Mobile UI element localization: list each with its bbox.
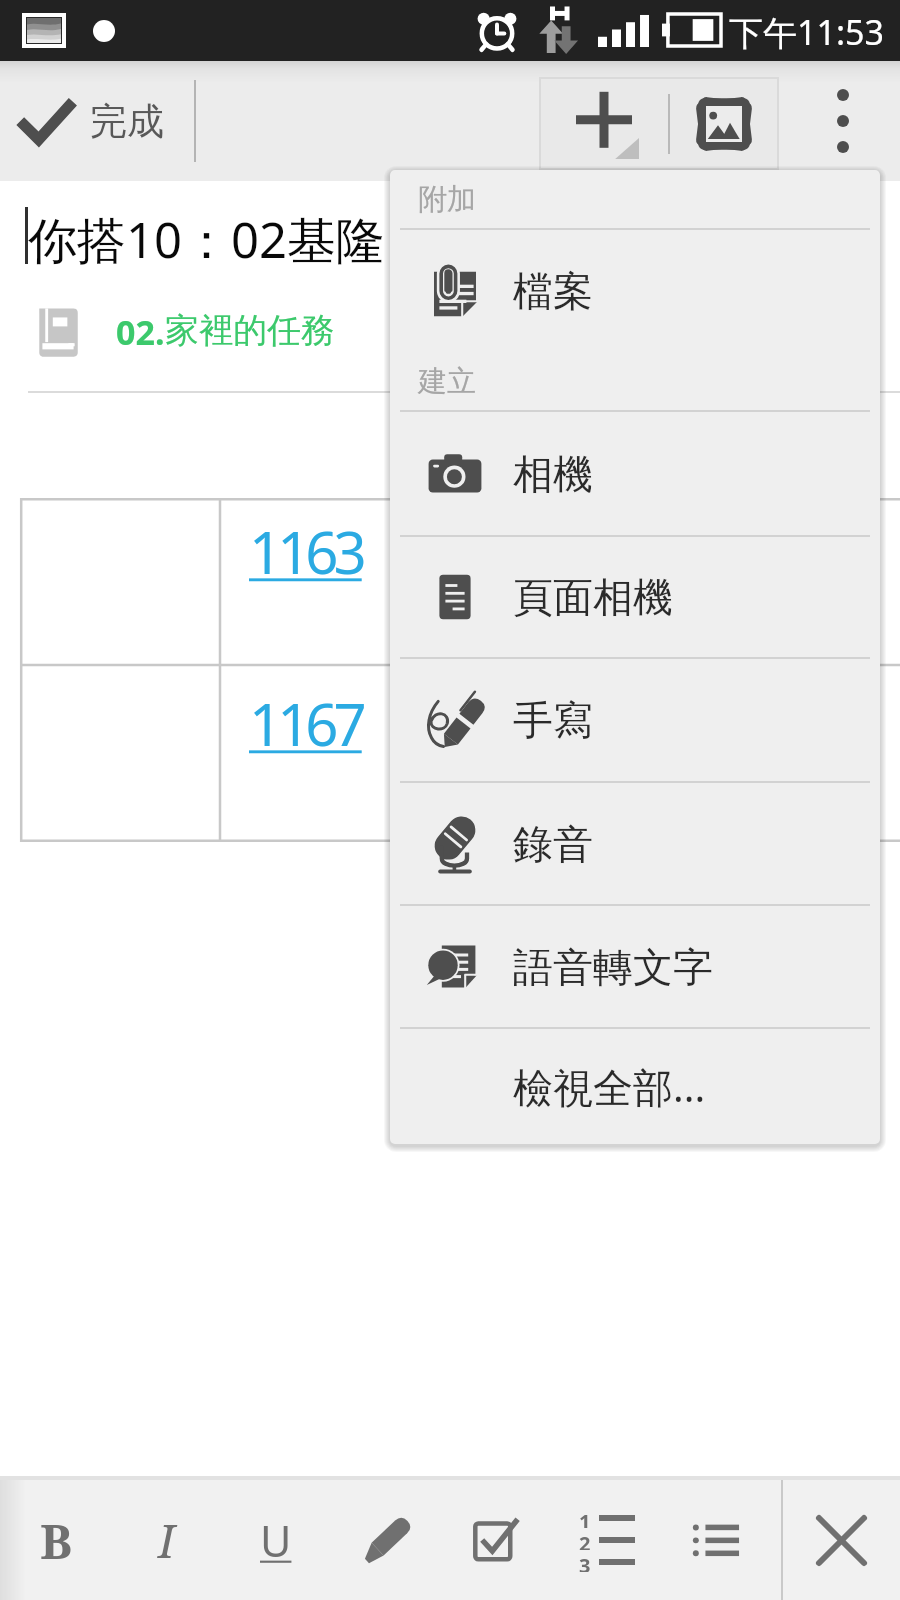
staticText: 3 bbox=[579, 1552, 591, 1572]
staticText: 建立 bbox=[418, 363, 476, 400]
staticText: 手寫 bbox=[513, 695, 593, 745]
button[interactable]: 檢視全部... bbox=[390, 1029, 880, 1144]
staticText: 完成 bbox=[90, 98, 164, 145]
staticText: 02. bbox=[116, 309, 165, 355]
staticText: 錄音 bbox=[513, 819, 593, 869]
staticText: 1167 bbox=[249, 684, 362, 763]
button[interactable]: Add attachment bbox=[540, 78, 668, 169]
button[interactable]: 手寫 bbox=[390, 659, 880, 781]
button[interactable]: 相機 bbox=[390, 412, 880, 535]
button[interactable]: 完成 bbox=[0, 76, 182, 167]
button[interactable]: Insert image bbox=[670, 78, 778, 169]
button[interactable]: Highlight bbox=[331, 1480, 441, 1600]
staticText: I bbox=[158, 1509, 175, 1572]
button[interactable]: 頁面相機 bbox=[390, 537, 880, 657]
button[interactable]: Bold bbox=[1, 1480, 111, 1600]
staticText: 家裡的任務 bbox=[165, 309, 335, 352]
staticText: 1163 bbox=[249, 512, 362, 591]
staticText: 檔案 bbox=[513, 266, 593, 316]
staticText: B bbox=[40, 1508, 73, 1573]
button[interactable]: 錄音 bbox=[390, 783, 880, 904]
staticText: U bbox=[260, 1511, 292, 1570]
button[interactable]: More options bbox=[785, 61, 900, 181]
staticText: 下午11:53 bbox=[729, 9, 884, 55]
staticText: 附加 bbox=[418, 181, 476, 218]
button[interactable]: Bulleted list bbox=[661, 1480, 771, 1600]
button[interactable]: Underline bbox=[221, 1480, 331, 1600]
staticText: 頁面相機 bbox=[513, 572, 673, 622]
staticText: 相機 bbox=[513, 449, 593, 499]
button[interactable]: Numbered list bbox=[551, 1480, 661, 1600]
button[interactable]: 檔案 bbox=[390, 230, 880, 352]
staticText: 2 bbox=[579, 1530, 591, 1550]
staticText: 語音轉文字 bbox=[513, 942, 713, 992]
staticText: 你搭10：02基隆 bbox=[28, 206, 386, 273]
staticText: 1 bbox=[579, 1508, 591, 1528]
button[interactable]: Checklist bbox=[441, 1480, 551, 1600]
button[interactable]: 語音轉文字 bbox=[390, 906, 880, 1027]
button[interactable]: Close formatting bar bbox=[783, 1480, 900, 1600]
button[interactable]: Italic bbox=[111, 1480, 221, 1600]
staticText: 檢視全部... bbox=[513, 1059, 706, 1114]
